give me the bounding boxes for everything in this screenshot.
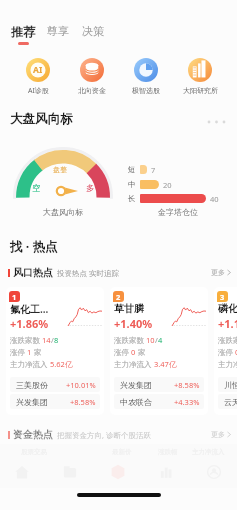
staticText: AI xyxy=(33,64,43,76)
staticText: 决策 xyxy=(82,24,104,38)
staticText: +10.01% xyxy=(66,380,96,390)
staticText: 空 xyxy=(32,183,41,194)
button[interactable]: 兴发集团 xyxy=(16,394,96,409)
staticText: 多 xyxy=(86,183,95,194)
staticText: 涨跌幅 xyxy=(158,448,178,456)
staticText: 找 · 热点 xyxy=(10,238,58,255)
button[interactable]: 中农联合 xyxy=(120,394,200,409)
button[interactable]: 三美股份 xyxy=(16,377,96,392)
staticText: 20 xyxy=(163,180,172,190)
button[interactable]: 大阳研究所 xyxy=(173,58,227,95)
staticText: 2 xyxy=(116,292,121,302)
staticText: 长 xyxy=(128,194,136,203)
button[interactable]: 极智选股 xyxy=(119,58,173,95)
staticText: 0 xyxy=(235,347,237,357)
button[interactable]: 2 xyxy=(110,287,208,415)
staticText: 大盘风向标 xyxy=(10,111,73,127)
staticText: 云天化 xyxy=(224,397,237,407)
button[interactable]: 川恒股份 xyxy=(224,377,237,392)
staticText: 更多 xyxy=(211,430,225,439)
staticText: 涨停 xyxy=(10,347,27,357)
staticText: 1 xyxy=(27,347,32,357)
staticText: 主力净流入 xyxy=(192,448,225,456)
staticText: AI诊股 xyxy=(28,86,49,96)
staticText: 4 xyxy=(158,335,163,345)
button[interactable]: Tab 3 xyxy=(110,464,126,480)
staticText: 资金热点 xyxy=(13,428,53,441)
staticText: 盘整 xyxy=(53,165,67,174)
staticText: 0 xyxy=(131,347,136,357)
staticText: 涨停 xyxy=(218,347,235,357)
button[interactable]: Tab 5 xyxy=(206,464,222,480)
staticText: 更多 xyxy=(211,268,225,277)
staticText: 金字塔仓位 xyxy=(158,207,198,217)
button[interactable]: Tab 1 xyxy=(14,464,30,480)
staticText: +1.40% xyxy=(114,316,153,331)
staticText: 家 xyxy=(136,347,146,357)
staticText: 涨跌家数 xyxy=(114,335,146,345)
staticText: 尊享 xyxy=(47,24,69,38)
staticText: 短 xyxy=(128,165,136,174)
staticText: 投资热点 实时追踪 xyxy=(57,268,119,278)
staticText: 3.47亿 xyxy=(154,359,177,369)
staticText: 三美股份 xyxy=(16,380,48,390)
button[interactable]: 决策 xyxy=(82,24,104,38)
staticText: 涨跌家数 xyxy=(10,335,42,345)
staticText: 大盘风向标 xyxy=(43,207,83,217)
staticText: 涨停 xyxy=(114,347,131,357)
staticText: 7 xyxy=(151,165,156,175)
staticText: +8.58% xyxy=(174,380,200,390)
button[interactable]: 兴发集团 xyxy=(120,377,200,392)
staticText: / xyxy=(51,335,54,345)
staticText: 北向资金 xyxy=(78,86,106,95)
staticText: 兴发集团 xyxy=(16,397,48,407)
staticText: 风口热点 xyxy=(13,266,53,279)
staticText: 股票交易 xyxy=(21,448,47,456)
staticText: 大阳研究所 xyxy=(183,86,218,95)
staticText: 中 xyxy=(128,180,136,189)
staticText: 磷化工 xyxy=(218,302,237,315)
staticText: +4.33% xyxy=(174,397,200,407)
staticText: 家 xyxy=(32,347,42,357)
staticText: 3 xyxy=(220,292,225,302)
staticText: 主力净流入 xyxy=(114,359,154,369)
button[interactable]: 尊享 xyxy=(47,24,69,38)
button[interactable]: 推荐 xyxy=(11,24,35,45)
staticText: 把握资金方向, 诊断个股活跃 xyxy=(57,430,151,440)
staticText: / xyxy=(155,335,158,345)
staticText: +1.86% xyxy=(10,316,49,331)
staticText: 极智选股 xyxy=(132,86,160,95)
staticText: 8 xyxy=(54,335,59,345)
staticText: 推荐 xyxy=(11,24,35,39)
staticText: 10 xyxy=(146,335,155,345)
staticText: 主力净流入 xyxy=(218,359,237,369)
staticText: 氟化工... xyxy=(10,302,49,316)
button[interactable]: 云天化 xyxy=(224,394,237,409)
staticText: 40 xyxy=(210,194,219,204)
button[interactable]: 1 xyxy=(6,287,104,415)
button[interactable]: 3 xyxy=(214,287,237,415)
staticText: 1 xyxy=(12,292,17,302)
button[interactable]: AI xyxy=(11,58,65,96)
staticText: 5.62亿 xyxy=(50,359,73,369)
button[interactable]: 资金热点 xyxy=(8,428,231,441)
staticText: +1.12% xyxy=(218,316,237,331)
button[interactable]: 风口热点 xyxy=(8,266,231,279)
button[interactable]: 北向资金 xyxy=(65,58,119,95)
staticText: 中农联合 xyxy=(120,397,152,407)
staticText: 主力净流入 xyxy=(10,359,50,369)
staticText: 涨跌家数 xyxy=(218,335,237,345)
button[interactable]: More options xyxy=(206,116,230,128)
staticText: 14 xyxy=(42,335,51,345)
staticText: 川恒股份 xyxy=(224,380,237,390)
staticText: 最新价 xyxy=(112,448,132,456)
button[interactable]: Tab 2 xyxy=(62,464,78,480)
button[interactable]: Tab 4 xyxy=(158,464,174,480)
staticText: 兴发集团 xyxy=(120,380,152,390)
staticText: +8.58% xyxy=(70,397,96,407)
staticText: 草甘膦 xyxy=(114,302,144,315)
